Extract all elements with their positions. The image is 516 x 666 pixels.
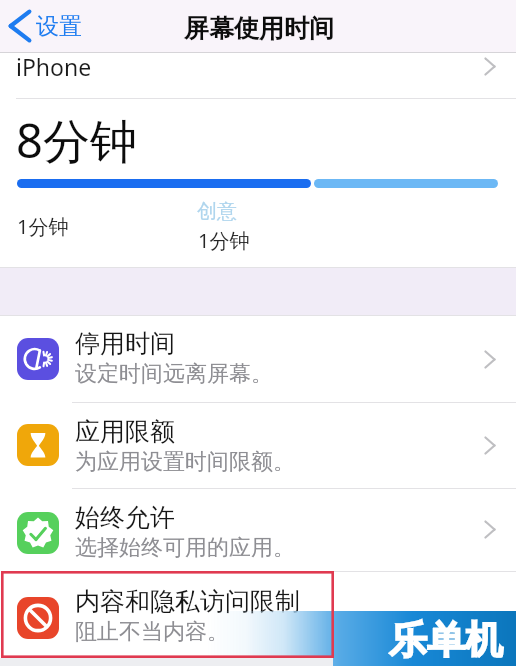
button[interactable]: 应用限额	[0, 402, 516, 488]
staticText: 内容和隐私访问限制	[75, 586, 300, 617]
staticText: 1分钟	[17, 213, 69, 240]
staticText: 乐单机	[389, 616, 503, 664]
staticText: 屏幕使用时间	[184, 13, 334, 44]
staticText: 设置	[36, 12, 82, 41]
button[interactable]: Back	[0, 0, 96, 52]
staticText: 8分钟	[16, 108, 137, 172]
button[interactable]: iPhone	[0, 53, 516, 98]
staticText: 设定时间远离屏幕。	[75, 360, 273, 388]
staticText: 为应用设置时间限额。	[75, 448, 295, 476]
staticText: iPhone	[16, 51, 92, 82]
staticText: 应用限额	[75, 416, 175, 447]
staticText: 1分钟	[198, 227, 250, 254]
staticText: 始终允许	[75, 502, 175, 533]
staticText: 选择始终可用的应用。	[75, 534, 295, 562]
button[interactable]: 内容和隐私访问限制	[0, 571, 516, 658]
button[interactable]: 停用时间	[0, 316, 516, 402]
other: Back	[7, 8, 33, 44]
staticText: 创意	[197, 199, 237, 224]
staticText: 停用时间	[75, 328, 175, 359]
staticText: 阻止不当内容。	[75, 618, 229, 646]
button[interactable]: 始终允许	[0, 488, 516, 571]
